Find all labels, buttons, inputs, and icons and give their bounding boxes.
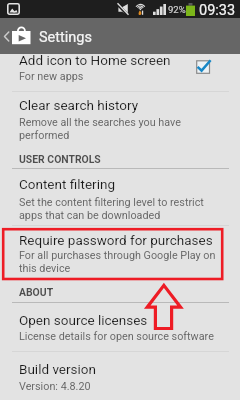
button[interactable] [0, 303, 240, 351]
staticText: Build version [19, 361, 216, 377]
button[interactable] [0, 54, 240, 90]
staticText: USER CONTROLS [19, 153, 216, 165]
button[interactable] [0, 91, 240, 143]
staticText: 92% [168, 4, 186, 15]
staticText: Require password for purchases [19, 232, 216, 248]
staticText: ABOUT [19, 286, 216, 298]
button[interactable] [0, 169, 240, 224]
staticText: License details for open source software [19, 330, 216, 343]
staticText: 09:33 [199, 2, 236, 19]
other: Screenshot [7, 3, 20, 15]
staticText: Content filtering [19, 176, 216, 192]
staticText: For new apps [19, 70, 216, 83]
staticText: Add icon to Home screen [19, 52, 216, 68]
staticText: Open source licenses [19, 312, 216, 328]
staticText: Clear search history [19, 97, 216, 113]
button[interactable] [0, 225, 240, 280]
staticText: Version: 4.8.20 [19, 380, 216, 393]
staticText: Set the content filtering level to restr… [19, 196, 216, 221]
staticText: For all purchases through Google Play on… [19, 249, 216, 274]
staticText: Settings [39, 29, 92, 46]
button[interactable] [0, 352, 240, 398]
button[interactable]: Navigate up [0, 18, 240, 54]
staticText: Remove all the searches you have perform… [19, 116, 216, 141]
